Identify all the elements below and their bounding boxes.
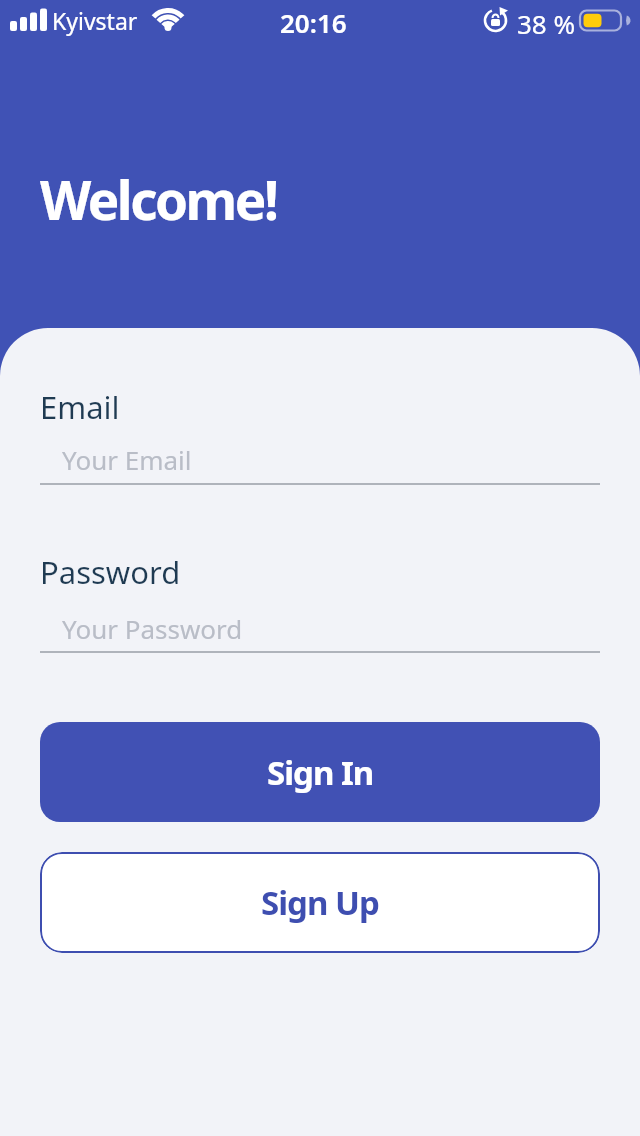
button[interactable]: Sign Up [40,852,600,953]
staticText: Your Password [62,611,243,646]
staticText: Sign In [267,750,374,795]
staticText: Kyivstar [52,5,138,36]
staticText: 38 % [517,6,576,41]
staticText: 20:16 [280,5,347,39]
staticText: Welcome! [40,163,277,235]
button[interactable] [40,435,600,485]
staticText: Your Email [62,442,192,477]
button[interactable] [40,603,600,653]
staticText: Sign Up [261,880,379,925]
button[interactable]: Sign In [40,722,600,822]
staticText: Email [40,386,120,428]
staticText: Password [40,551,181,593]
